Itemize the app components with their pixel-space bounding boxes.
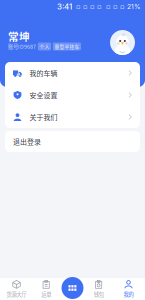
staticText: 个人 <box>39 43 49 50</box>
button[interactable]: 钱包 <box>84 278 113 299</box>
staticText: 重型半挂车 <box>54 43 79 50</box>
button[interactable]: 货源大厅 <box>2 278 31 299</box>
button[interactable]: 扫码 <box>61 277 83 299</box>
staticText: 3:41 <box>57 2 72 11</box>
staticText: 账号ID9687 <box>8 43 36 50</box>
button[interactable]: 退出登录 <box>5 131 140 152</box>
staticText: ▫ ▫ ▫ ▫ ▫ ▫ ▫ 21% <box>72 2 141 11</box>
button[interactable]: 我的车辆 <box>5 62 140 84</box>
staticText: 钱包 <box>94 290 104 298</box>
button[interactable]: 关于我们 <box>5 106 140 128</box>
staticText: 常坤 <box>8 28 30 44</box>
button[interactable]: 安全设置 <box>5 84 140 106</box>
staticText: 安全设置 <box>29 90 57 100</box>
button[interactable]: 运单 <box>32 278 61 299</box>
staticText: 关于我们 <box>29 112 57 122</box>
button[interactable]: 我的 <box>114 278 143 299</box>
staticText: 我的车辆 <box>29 68 57 78</box>
staticText: 退出登录 <box>13 136 41 146</box>
staticText: 运单 <box>41 290 51 298</box>
staticText: 货源大厅 <box>6 290 26 298</box>
staticText: 我的 <box>123 290 133 298</box>
